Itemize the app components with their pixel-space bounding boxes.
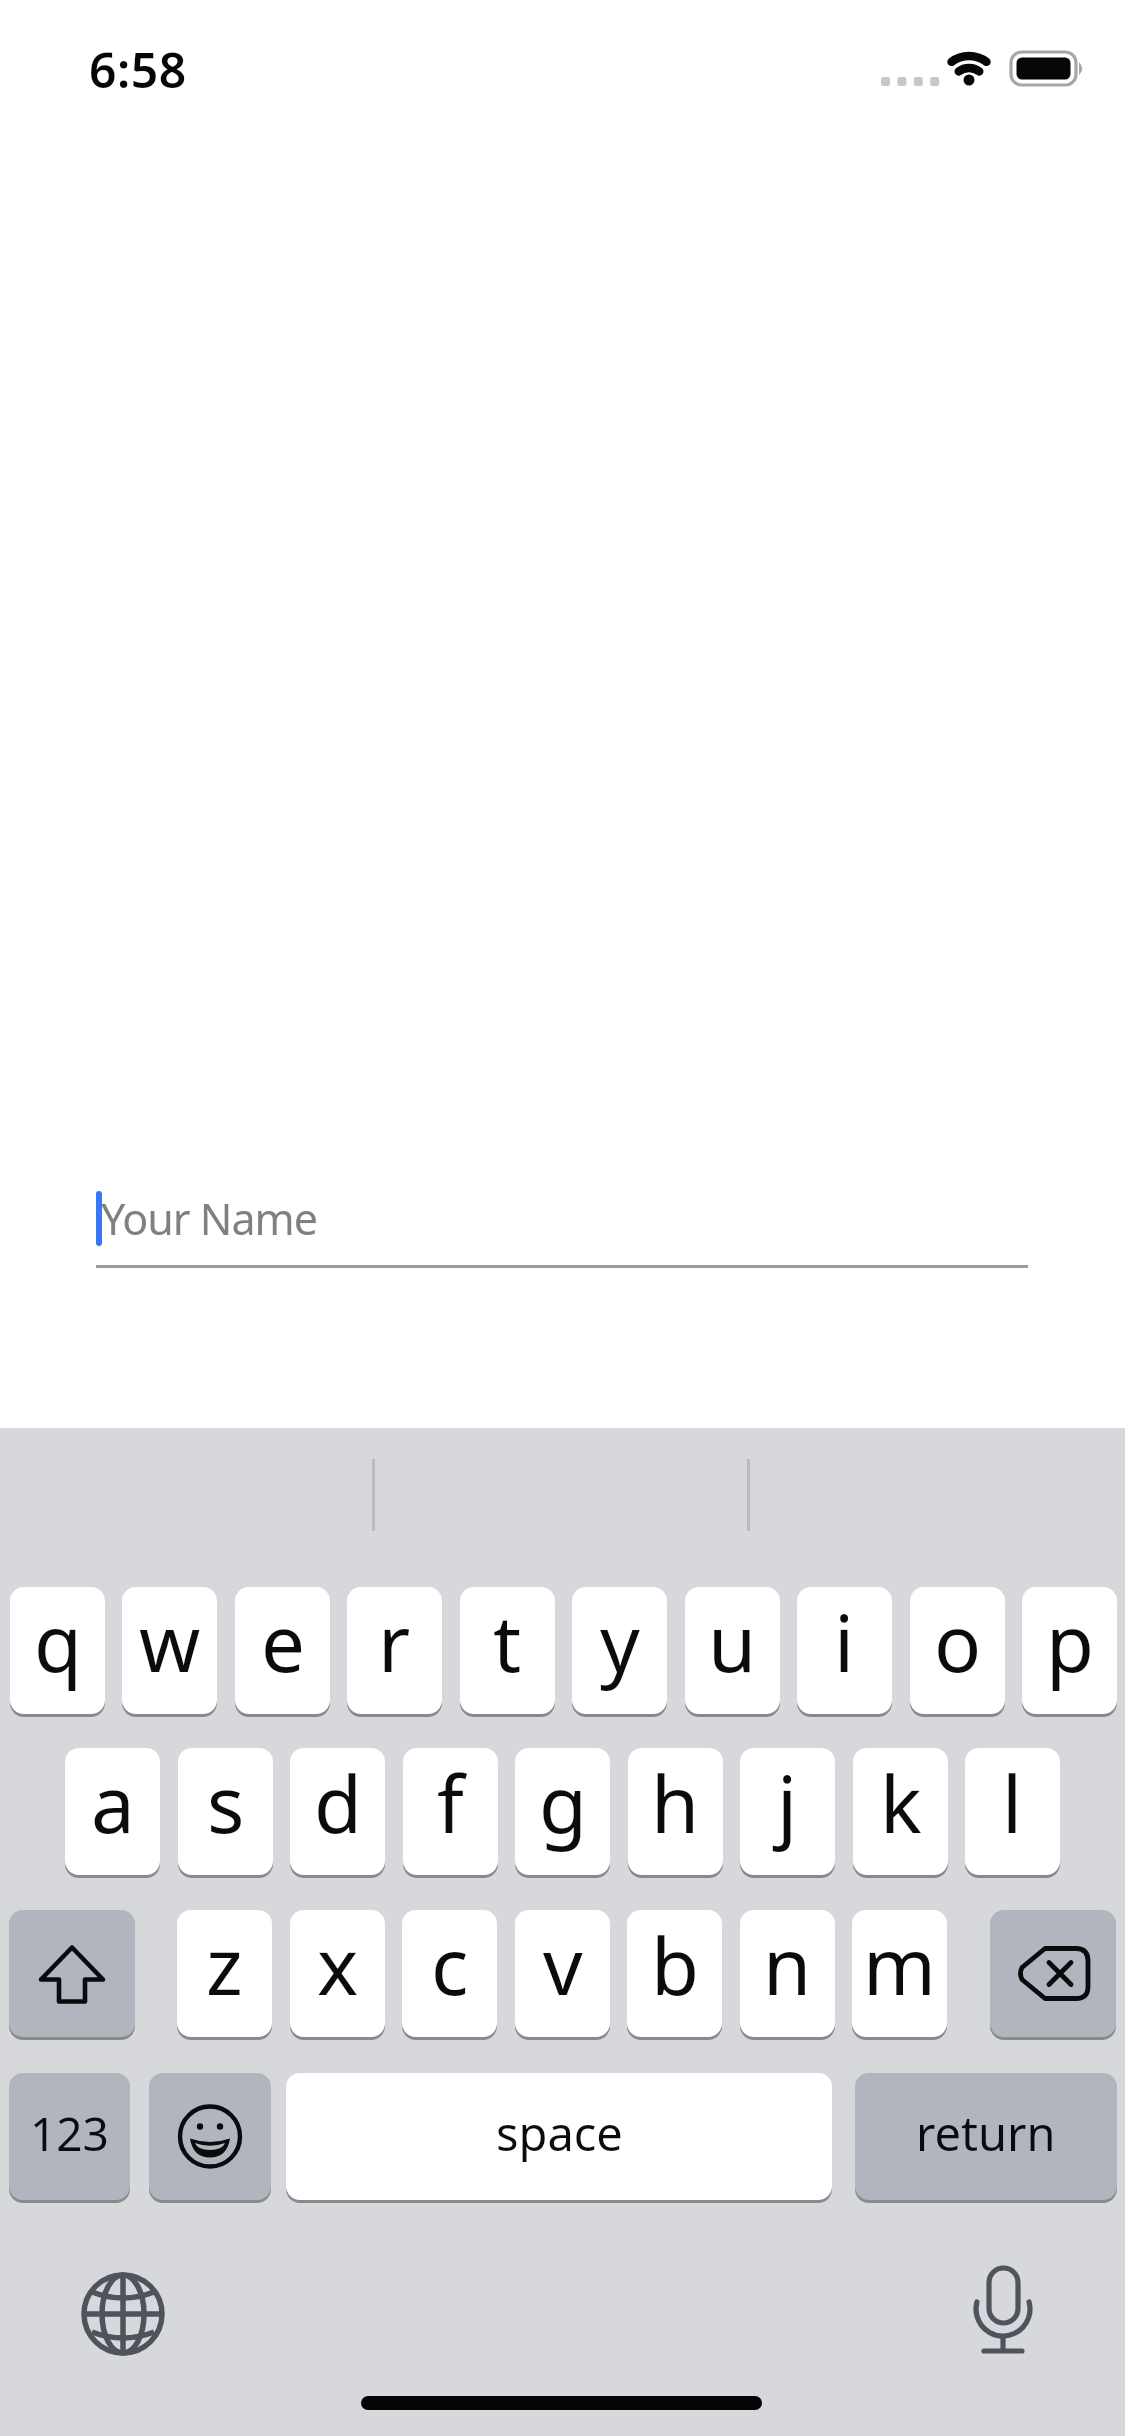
staticText: e [261, 1589, 305, 1695]
button[interactable]: o [910, 1587, 1005, 1714]
button[interactable]: j [740, 1748, 835, 1875]
button[interactable]: e [235, 1587, 330, 1714]
staticText: v [543, 1912, 583, 2018]
button[interactable]: i [797, 1587, 892, 1714]
staticText: p [1046, 1589, 1094, 1695]
button[interactable]: b [627, 1910, 722, 2037]
button[interactable]: h [628, 1748, 723, 1875]
staticText: i [834, 1589, 855, 1695]
button[interactable] [9, 1910, 135, 2037]
staticText: c [431, 1912, 469, 2018]
button[interactable]: space [286, 2073, 832, 2200]
staticText: o [934, 1589, 982, 1695]
staticText: l [1002, 1750, 1023, 1856]
staticText: m [863, 1912, 936, 2018]
staticText: space [496, 2101, 623, 2165]
button[interactable]: v [515, 1910, 610, 2037]
button[interactable]: 123 [9, 2073, 130, 2200]
staticText: r [378, 1589, 411, 1695]
staticText: h [651, 1750, 700, 1856]
button[interactable]: f [403, 1748, 498, 1875]
staticText: d [314, 1750, 362, 1856]
staticText: 6:58 [89, 37, 187, 102]
button[interactable]: n [740, 1910, 835, 2037]
button[interactable] [955, 2266, 1051, 2362]
staticText: g [539, 1750, 587, 1856]
button[interactable]: p [1022, 1587, 1117, 1714]
button[interactable] [75, 2266, 171, 2362]
button[interactable]: q [10, 1587, 105, 1714]
staticText: u [708, 1589, 757, 1695]
staticText: q [34, 1589, 82, 1695]
button[interactable]: d [290, 1748, 385, 1875]
button[interactable]: t [460, 1587, 555, 1714]
staticText: w [139, 1589, 201, 1695]
staticText: x [317, 1912, 359, 2018]
button[interactable]: x [290, 1910, 385, 2037]
button[interactable]: z [177, 1910, 272, 2037]
button[interactable]: s [178, 1748, 273, 1875]
staticText: j [777, 1750, 798, 1856]
button[interactable]: k [853, 1748, 948, 1875]
staticText: n [763, 1912, 812, 2018]
button[interactable]: m [852, 1910, 947, 2037]
button[interactable] [96, 1180, 1028, 1270]
staticText: Your Name [101, 1189, 317, 1248]
staticText: return [916, 2101, 1056, 2165]
staticText: f [437, 1750, 464, 1856]
button[interactable]: u [685, 1587, 780, 1714]
staticText: t [493, 1589, 522, 1695]
button[interactable]: r [347, 1587, 442, 1714]
staticText: y [600, 1589, 640, 1695]
button[interactable]: g [515, 1748, 610, 1875]
staticText: 123 [30, 2102, 109, 2165]
button[interactable]: return [855, 2073, 1117, 2200]
button[interactable]: c [402, 1910, 497, 2037]
button[interactable] [149, 2073, 271, 2200]
button[interactable]: y [572, 1587, 667, 1714]
button[interactable] [990, 1910, 1116, 2037]
button[interactable]: w [122, 1587, 217, 1714]
staticText: b [651, 1912, 699, 2018]
button[interactable]: a [65, 1748, 160, 1875]
button[interactable]: l [965, 1748, 1060, 1875]
staticText: a [91, 1750, 135, 1856]
staticText: z [206, 1912, 243, 2018]
staticText: s [207, 1750, 245, 1856]
staticText: k [880, 1750, 922, 1856]
